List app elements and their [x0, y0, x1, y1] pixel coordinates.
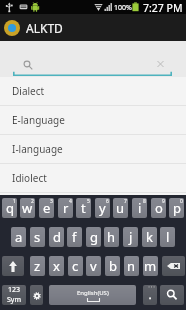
- button[interactable]: u: [113, 198, 128, 218]
- button[interactable]: a: [11, 227, 26, 247]
- staticText: 7: [124, 198, 127, 205]
- staticText: v: [90, 257, 97, 275]
- button[interactable]: Settings: [30, 285, 43, 305]
- staticText: q: [6, 199, 14, 217]
- button[interactable]: i: [132, 198, 147, 218]
- button[interactable]: y: [95, 198, 110, 218]
- staticText: b: [109, 257, 117, 275]
- button[interactable]: [0, 41, 186, 77]
- staticText: ALKTD: [26, 20, 63, 36]
- staticText: a: [15, 228, 23, 246]
- button[interactable]: r: [58, 198, 73, 218]
- staticText: 7:27 PM: [143, 1, 183, 15]
- button[interactable]: e: [39, 198, 54, 218]
- button[interactable]: f: [67, 227, 82, 247]
- staticText: h: [107, 228, 116, 246]
- staticText: I-language: [12, 142, 63, 156]
- button[interactable]: d: [49, 227, 64, 247]
- button[interactable]: Idiolect: [0, 164, 186, 193]
- staticText: y: [99, 199, 106, 217]
- button[interactable]: c: [68, 256, 83, 276]
- button[interactable]: s: [30, 227, 45, 247]
- staticText: p: [173, 199, 181, 217]
- staticText: l: [166, 228, 170, 246]
- button[interactable]: I-language: [0, 135, 186, 164]
- button[interactable]: o: [151, 198, 166, 218]
- staticText: w: [22, 199, 33, 217]
- button[interactable]: g: [86, 227, 101, 247]
- button[interactable]: E-language: [0, 106, 186, 135]
- staticText: o: [155, 199, 163, 217]
- button[interactable]: j: [123, 227, 138, 247]
- staticText: i: [138, 199, 142, 217]
- staticText: 8: [143, 198, 146, 205]
- staticText: 2: [31, 198, 34, 205]
- staticText: 0: [180, 198, 183, 205]
- staticText: j: [129, 228, 133, 246]
- button[interactable]: k: [142, 227, 157, 247]
- staticText: e: [43, 199, 51, 217]
- staticText: d: [53, 228, 61, 246]
- staticText: t: [81, 199, 86, 217]
- button[interactable]: v: [86, 256, 101, 276]
- button[interactable]: Search: [160, 285, 184, 305]
- staticText: Idiolect: [12, 171, 47, 185]
- button[interactable]: [143, 285, 157, 305]
- staticText: 4: [69, 198, 72, 205]
- button[interactable]: z: [30, 256, 45, 276]
- button[interactable]: b: [105, 256, 120, 276]
- button[interactable]: p: [169, 198, 184, 218]
- staticText: r: [63, 199, 69, 217]
- staticText: n: [127, 257, 136, 275]
- staticText: u: [116, 199, 125, 217]
- staticText: f: [72, 228, 77, 246]
- staticText: g: [90, 228, 98, 246]
- button[interactable]: t: [76, 198, 91, 218]
- button[interactable]: m: [143, 256, 158, 276]
- staticText: E-language: [12, 113, 65, 127]
- staticText: m: [144, 257, 157, 275]
- staticText: Sym: [7, 295, 21, 305]
- staticText: 9: [162, 198, 165, 205]
- staticText: 3: [50, 198, 53, 205]
- button[interactable]: Shift: [2, 256, 24, 276]
- staticText: Dialect: [12, 84, 45, 98]
- button[interactable]: English(US): [49, 285, 136, 305]
- staticText: 6: [106, 198, 109, 205]
- button[interactable]: q: [2, 198, 17, 218]
- staticText: c: [72, 257, 79, 275]
- button[interactable]: h: [104, 227, 119, 247]
- staticText: 123: [8, 285, 21, 295]
- button[interactable]: n: [124, 256, 139, 276]
- button[interactable]: 123: [2, 285, 26, 305]
- button[interactable]: Dialect: [0, 77, 186, 106]
- button[interactable]: w: [20, 198, 35, 218]
- button[interactable]: Backspace: [162, 256, 185, 276]
- staticText: s: [34, 228, 41, 246]
- staticText: 1: [13, 198, 16, 205]
- staticText: x: [53, 257, 60, 275]
- staticText: 100%: [114, 3, 132, 13]
- staticText: 5: [87, 198, 90, 205]
- staticText: k: [146, 228, 153, 246]
- staticText: z: [34, 257, 41, 275]
- staticText: English(US): [77, 289, 109, 297]
- button[interactable]: x: [49, 256, 64, 276]
- button[interactable]: l: [160, 227, 175, 247]
